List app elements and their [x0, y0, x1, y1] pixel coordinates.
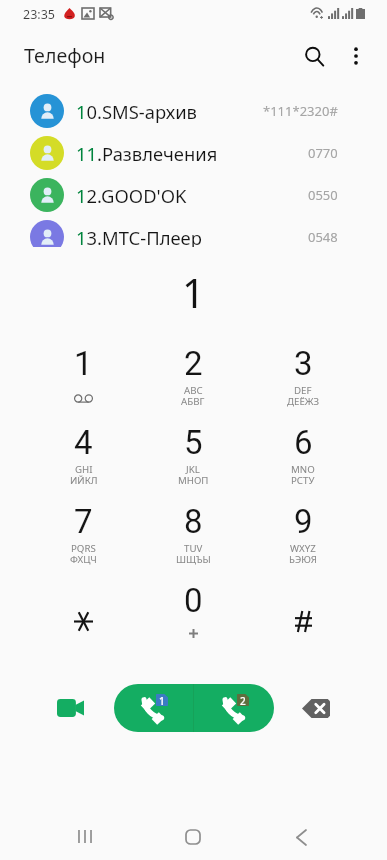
staticText: МНОП: [178, 474, 209, 487]
staticText: 1: [182, 265, 205, 319]
button[interactable]: 3: [248, 331, 358, 410]
button[interactable]: Recent apps: [59, 812, 110, 860]
button[interactable]: 7: [29, 489, 138, 568]
button[interactable]: 4: [29, 410, 138, 489]
staticText: ЬЭЮЯ: [289, 553, 318, 566]
button[interactable]: 5: [138, 410, 248, 489]
button[interactable]: Home: [167, 812, 218, 860]
staticText: *111*2320#: [263, 102, 338, 120]
button[interactable]: Video call: [55, 696, 85, 720]
button[interactable]: Call with SIM 1: [114, 684, 193, 732]
staticText: 6: [294, 423, 313, 462]
button[interactable]: [248, 568, 358, 647]
staticText: 1: [74, 344, 93, 383]
staticText: ABC: [184, 384, 203, 397]
button[interactable]: 6: [248, 410, 358, 489]
staticText: 2: [184, 344, 203, 383]
button[interactable]: [29, 568, 138, 647]
button[interactable]: 11.Развлечения: [0, 132, 387, 174]
button[interactable]: 8: [138, 489, 248, 568]
staticText: DEF: [294, 384, 312, 397]
staticText: 5: [184, 423, 203, 462]
staticText: ИЙКЛ: [70, 474, 98, 487]
button[interactable]: More options: [334, 34, 378, 78]
staticText: 1: [159, 694, 165, 706]
staticText: 3: [294, 344, 313, 383]
staticText: GHI: [75, 463, 93, 476]
button[interactable]: 9: [248, 489, 358, 568]
button[interactable]: Backspace: [301, 696, 331, 720]
staticText: JKL: [186, 463, 200, 476]
staticText: 12.GOOD'OK: [76, 183, 187, 208]
button[interactable]: 1: [29, 331, 138, 410]
staticText: 0548: [308, 228, 338, 246]
button[interactable]: 0: [138, 568, 248, 647]
staticText: 0550: [308, 186, 338, 204]
staticText: 0: [184, 581, 203, 620]
button[interactable]: Back: [276, 812, 327, 860]
staticText: ФХЦЧ: [70, 553, 97, 566]
staticText: 10.SMS-архив: [76, 99, 197, 124]
staticText: 11.Развлечения: [76, 141, 218, 166]
staticText: 4: [74, 423, 93, 462]
button[interactable]: Call with SIM 2: [194, 684, 274, 732]
button[interactable]: 13.МТС-Плеер: [0, 216, 387, 247]
staticText: 8: [184, 502, 203, 541]
staticText: ШЩЪЫ: [176, 553, 211, 566]
button[interactable]: 10.SMS-архив: [0, 90, 387, 132]
button[interactable]: 2: [138, 331, 248, 410]
staticText: 2: [240, 694, 246, 706]
staticText: 23:35: [23, 6, 55, 23]
staticText: АБВГ: [181, 395, 205, 408]
staticText: WXYZ: [290, 542, 316, 555]
staticText: PQRS: [71, 542, 96, 555]
staticText: MNO: [291, 463, 315, 476]
staticText: 13.МТС-Плеер: [76, 225, 202, 247]
staticText: ДЕЁЖЗ: [287, 395, 320, 408]
staticText: Телефон: [24, 42, 106, 69]
staticText: 0770: [308, 144, 338, 162]
staticText: 7: [74, 502, 93, 541]
button[interactable]: Search: [292, 34, 336, 78]
button[interactable]: 12.GOOD'OK: [0, 174, 387, 216]
staticText: 9: [294, 502, 313, 541]
staticText: TUV: [184, 542, 203, 555]
staticText: РСТУ: [291, 474, 315, 487]
